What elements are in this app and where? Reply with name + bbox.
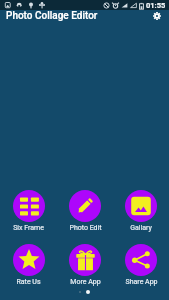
staticText: Share App	[125, 278, 158, 286]
staticText: 01:55	[146, 1, 166, 10]
button[interactable]: More App	[57, 244, 113, 286]
staticText: Six Frame	[13, 224, 44, 232]
button[interactable]: Photo Edit	[57, 190, 113, 232]
button[interactable]: Gallary	[113, 190, 169, 232]
button[interactable]: Rate Us	[0, 244, 57, 286]
button[interactable]: Share App	[113, 244, 169, 286]
button[interactable]: Six Frame	[0, 190, 57, 232]
button[interactable]: Settings	[148, 7, 165, 24]
staticText: More App	[70, 278, 101, 286]
staticText: Photo Collage Editor	[6, 10, 98, 22]
staticText: Photo Edit	[69, 224, 102, 232]
staticText: Rate Us	[16, 278, 41, 286]
staticText: Gallary	[130, 224, 152, 232]
